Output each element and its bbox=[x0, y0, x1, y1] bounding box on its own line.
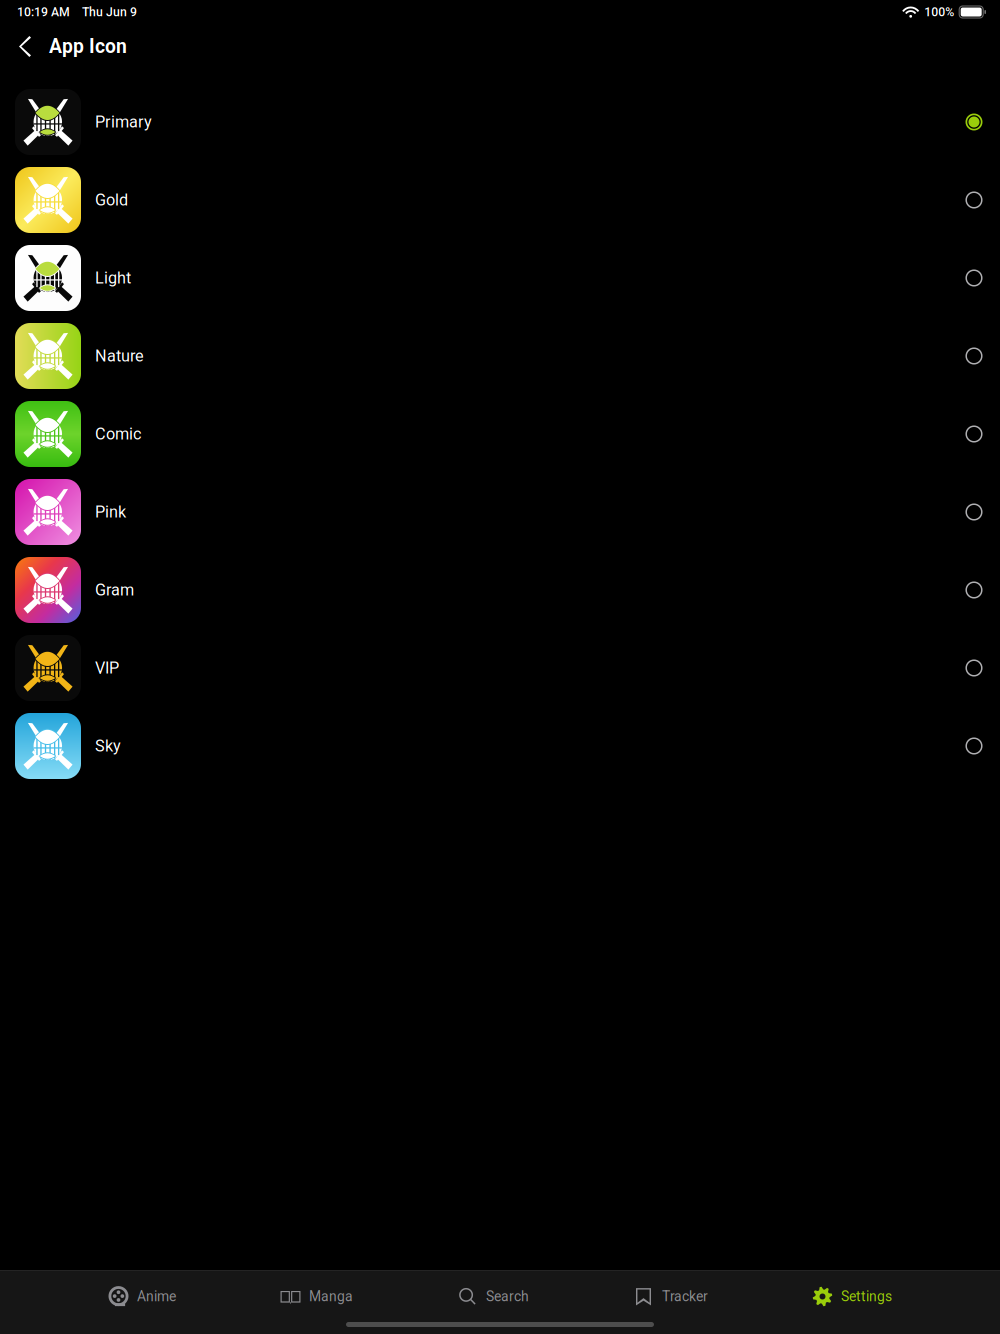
staticText: Pink bbox=[95, 502, 126, 522]
staticText: Thu Jun 9 bbox=[82, 5, 137, 19]
button[interactable]: Primary bbox=[0, 83, 1000, 161]
staticText: Light bbox=[95, 268, 131, 288]
button[interactable]: Settings bbox=[812, 1281, 892, 1311]
staticText: Primary bbox=[95, 112, 152, 132]
button[interactable]: Search bbox=[457, 1281, 529, 1311]
button[interactable]: Light bbox=[0, 239, 1000, 317]
button[interactable]: VIP bbox=[0, 629, 1000, 707]
staticText: Comic bbox=[95, 424, 142, 444]
button[interactable]: Tracker bbox=[633, 1281, 708, 1311]
staticText: Anime bbox=[137, 1288, 176, 1305]
staticText: Search bbox=[486, 1288, 529, 1305]
button[interactable]: Anime bbox=[108, 1281, 176, 1311]
staticText: Gold bbox=[95, 190, 128, 210]
button[interactable]: Comic bbox=[0, 395, 1000, 473]
staticText: App Icon bbox=[49, 35, 127, 58]
button[interactable]: Nature bbox=[0, 317, 1000, 395]
staticText: 10:19 AM bbox=[17, 5, 70, 19]
button[interactable]: Gold bbox=[0, 161, 1000, 239]
staticText: Manga bbox=[309, 1288, 353, 1305]
button[interactable]: Gram bbox=[0, 551, 1000, 629]
staticText: 100% bbox=[924, 5, 954, 19]
staticText: Gram bbox=[95, 580, 134, 600]
staticText: Settings bbox=[841, 1288, 892, 1305]
button[interactable]: Back bbox=[5, 24, 45, 68]
staticText: Nature bbox=[95, 346, 144, 366]
staticText: VIP bbox=[95, 658, 119, 678]
staticText: Tracker bbox=[662, 1288, 708, 1305]
button[interactable]: Pink bbox=[0, 473, 1000, 551]
button[interactable]: Manga bbox=[280, 1281, 353, 1311]
staticText: Sky bbox=[95, 736, 121, 756]
button[interactable]: Sky bbox=[0, 707, 1000, 785]
